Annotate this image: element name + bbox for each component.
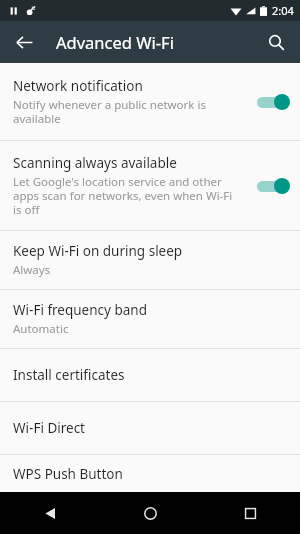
staticText: Always	[13, 262, 51, 278]
staticText: Advanced Wi-Fi	[56, 31, 174, 53]
staticText: Automatic	[13, 321, 69, 337]
staticText: Wi-Fi frequency band	[13, 301, 147, 319]
staticText: Notify whenever a public network is avai…	[13, 97, 206, 126]
staticText: WPS Push Button	[13, 465, 123, 483]
button[interactable]: Search	[258, 24, 294, 60]
button[interactable]: Home	[100, 492, 200, 534]
button[interactable]: Back	[0, 492, 100, 534]
staticText: Scanning always available	[13, 154, 177, 172]
staticText: Let Google's location service and other …	[13, 174, 233, 217]
button[interactable]: WPS Push Button	[0, 455, 300, 492]
button[interactable]: Install certificates	[0, 349, 300, 401]
button[interactable]: Wi-Fi Direct	[0, 402, 300, 454]
button[interactable]: Recent apps	[200, 492, 300, 534]
staticText: Install certificates	[13, 366, 125, 384]
staticText: Keep Wi-Fi on during sleep	[13, 242, 183, 260]
button[interactable]: Toggle	[256, 176, 290, 196]
staticText: Network notification	[13, 77, 143, 95]
button[interactable]: Wi-Fi frequency band	[0, 290, 300, 348]
button[interactable]: Keep Wi-Fi on during sleep	[0, 231, 300, 289]
button[interactable]: Scanning always available	[0, 141, 300, 230]
staticText: Wi-Fi Direct	[13, 419, 85, 437]
button[interactable]: Network notification	[0, 63, 300, 140]
button[interactable]: Toggle	[256, 92, 290, 112]
staticText: 2:04	[272, 3, 294, 18]
button[interactable]: Back	[6, 24, 42, 60]
